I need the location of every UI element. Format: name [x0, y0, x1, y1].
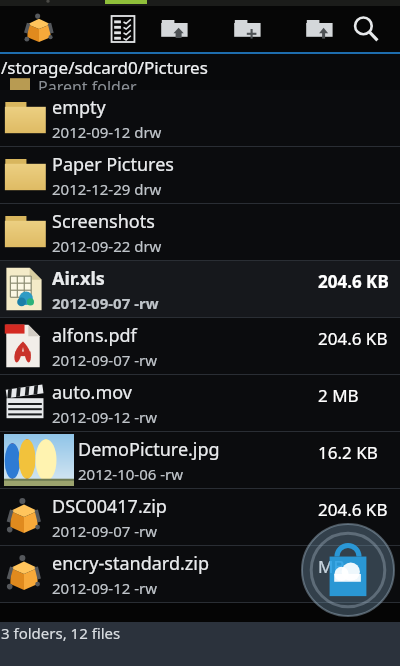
button[interactable]: Home folder: [153, 7, 197, 51]
staticText: MB: [318, 555, 345, 578]
button[interactable]: Air.xls: [0, 261, 400, 317]
staticText: Air.xls: [52, 266, 105, 291]
button[interactable]: Search: [344, 7, 388, 51]
staticText: 2012-09-22 drw: [52, 236, 162, 256]
staticText: 2012-09-07 -rw: [52, 521, 158, 541]
staticText: DSC00417.zip: [52, 494, 167, 519]
button[interactable]: encry-standard.zip: [0, 546, 400, 602]
staticText: empty: [52, 95, 106, 120]
staticText: alfons.pdf: [52, 323, 137, 348]
button[interactable]: New folder: [226, 7, 270, 51]
staticText: 204.6 KB: [318, 327, 388, 350]
staticText: 16.2 KB: [318, 441, 378, 464]
staticText: 2012-10-06 -rw: [78, 464, 184, 484]
staticText: 2012-09-07 -rw: [52, 350, 158, 370]
button[interactable]: App: [18, 8, 60, 50]
staticText: 204.6 KB: [318, 498, 388, 521]
button[interactable]: Paper Pictures: [0, 147, 400, 203]
button[interactable]: Select items: [102, 8, 144, 50]
staticText: auto.mov: [52, 380, 132, 405]
staticText: encry-standard.zip: [52, 551, 209, 576]
button[interactable]: DemoPicture.jpg: [0, 432, 400, 488]
staticText: 2012-09-07 -rw: [52, 293, 159, 313]
staticText: DemoPicture.jpg: [78, 437, 220, 462]
staticText: Parent folder: [38, 76, 137, 90]
staticText: 2012-09-12 -rw: [52, 407, 158, 427]
button[interactable]: Screenshots: [0, 204, 400, 260]
button[interactable]: DSC00417.zip: [0, 489, 400, 545]
staticText: 2012-09-12 drw: [52, 122, 162, 142]
staticText: Paper Pictures: [52, 152, 174, 177]
staticText: 2012-12-29 drw: [52, 179, 162, 199]
button[interactable]: empty: [0, 90, 400, 146]
staticText: 2012-09-12 -rw: [52, 578, 158, 598]
button[interactable]: auto.mov: [0, 375, 400, 431]
staticText: 2 MB: [318, 384, 359, 407]
staticText: Screenshots: [52, 209, 155, 234]
staticText: 204.6 KB: [318, 270, 389, 293]
staticText: 3 folders, 12 files: [1, 623, 121, 643]
button[interactable]: alfons.pdf: [0, 318, 400, 374]
button[interactable]: Parent folder: [0, 76, 400, 90]
staticText: /storage/sdcard0/Pictures: [1, 56, 208, 79]
button[interactable]: Parent folder: [298, 7, 342, 51]
